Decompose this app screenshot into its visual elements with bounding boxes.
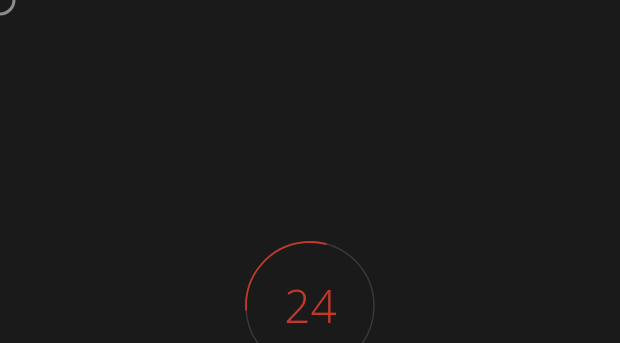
- staticText: 24: [284, 274, 337, 337]
- button[interactable]: Loading progress, 24: [0, 0, 620, 343]
